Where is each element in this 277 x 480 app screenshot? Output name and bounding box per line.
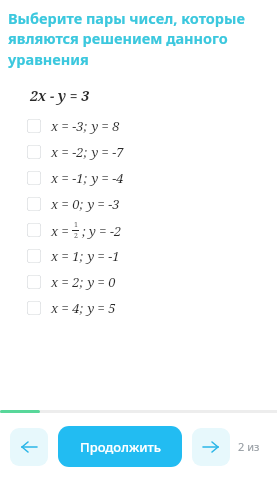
button[interactable]: x = 4; [0,295,277,321]
staticText: x = 4; [51,299,84,317]
staticText: y = 8 [88,117,120,135]
staticText: 2 из [238,439,260,454]
staticText: y = −7 [88,143,124,161]
button[interactable]: x = 1; [0,243,277,269]
staticText: x = [51,222,69,240]
staticText: Выберите пары чисел, которые являются ре… [8,8,271,70]
staticText: 2 [74,231,78,241]
staticText: x = 2; [51,273,84,291]
staticText: 2x − y = 3 [30,86,90,105]
button[interactable]: x = −3; [0,113,277,139]
staticText: x = 0; [51,195,84,213]
staticText: y = 0 [84,273,116,291]
button[interactable]: x = −1; [0,165,277,191]
staticText: y = −1 [84,247,120,265]
button[interactable]: x = −2; [0,139,277,165]
staticText: x = 1; [51,247,84,265]
button[interactable]: x = 2; [0,269,277,295]
staticText: x = −1; [51,169,88,187]
button[interactable]: Back [10,428,48,466]
staticText: 1 [74,220,78,230]
button[interactable]: Продолжить [58,426,182,467]
staticText: x = −2; [51,143,88,161]
staticText: ; y = −2 [82,222,122,240]
button[interactable]: x = 0; [0,191,277,217]
staticText: y = −3 [84,195,120,213]
staticText: Продолжить [80,438,161,456]
staticText: y = −4 [88,169,124,187]
staticText: y = 5 [84,299,116,317]
button[interactable]: Forward [192,428,230,466]
staticText: x = −3; [51,117,88,135]
button[interactable]: x = [0,217,277,243]
